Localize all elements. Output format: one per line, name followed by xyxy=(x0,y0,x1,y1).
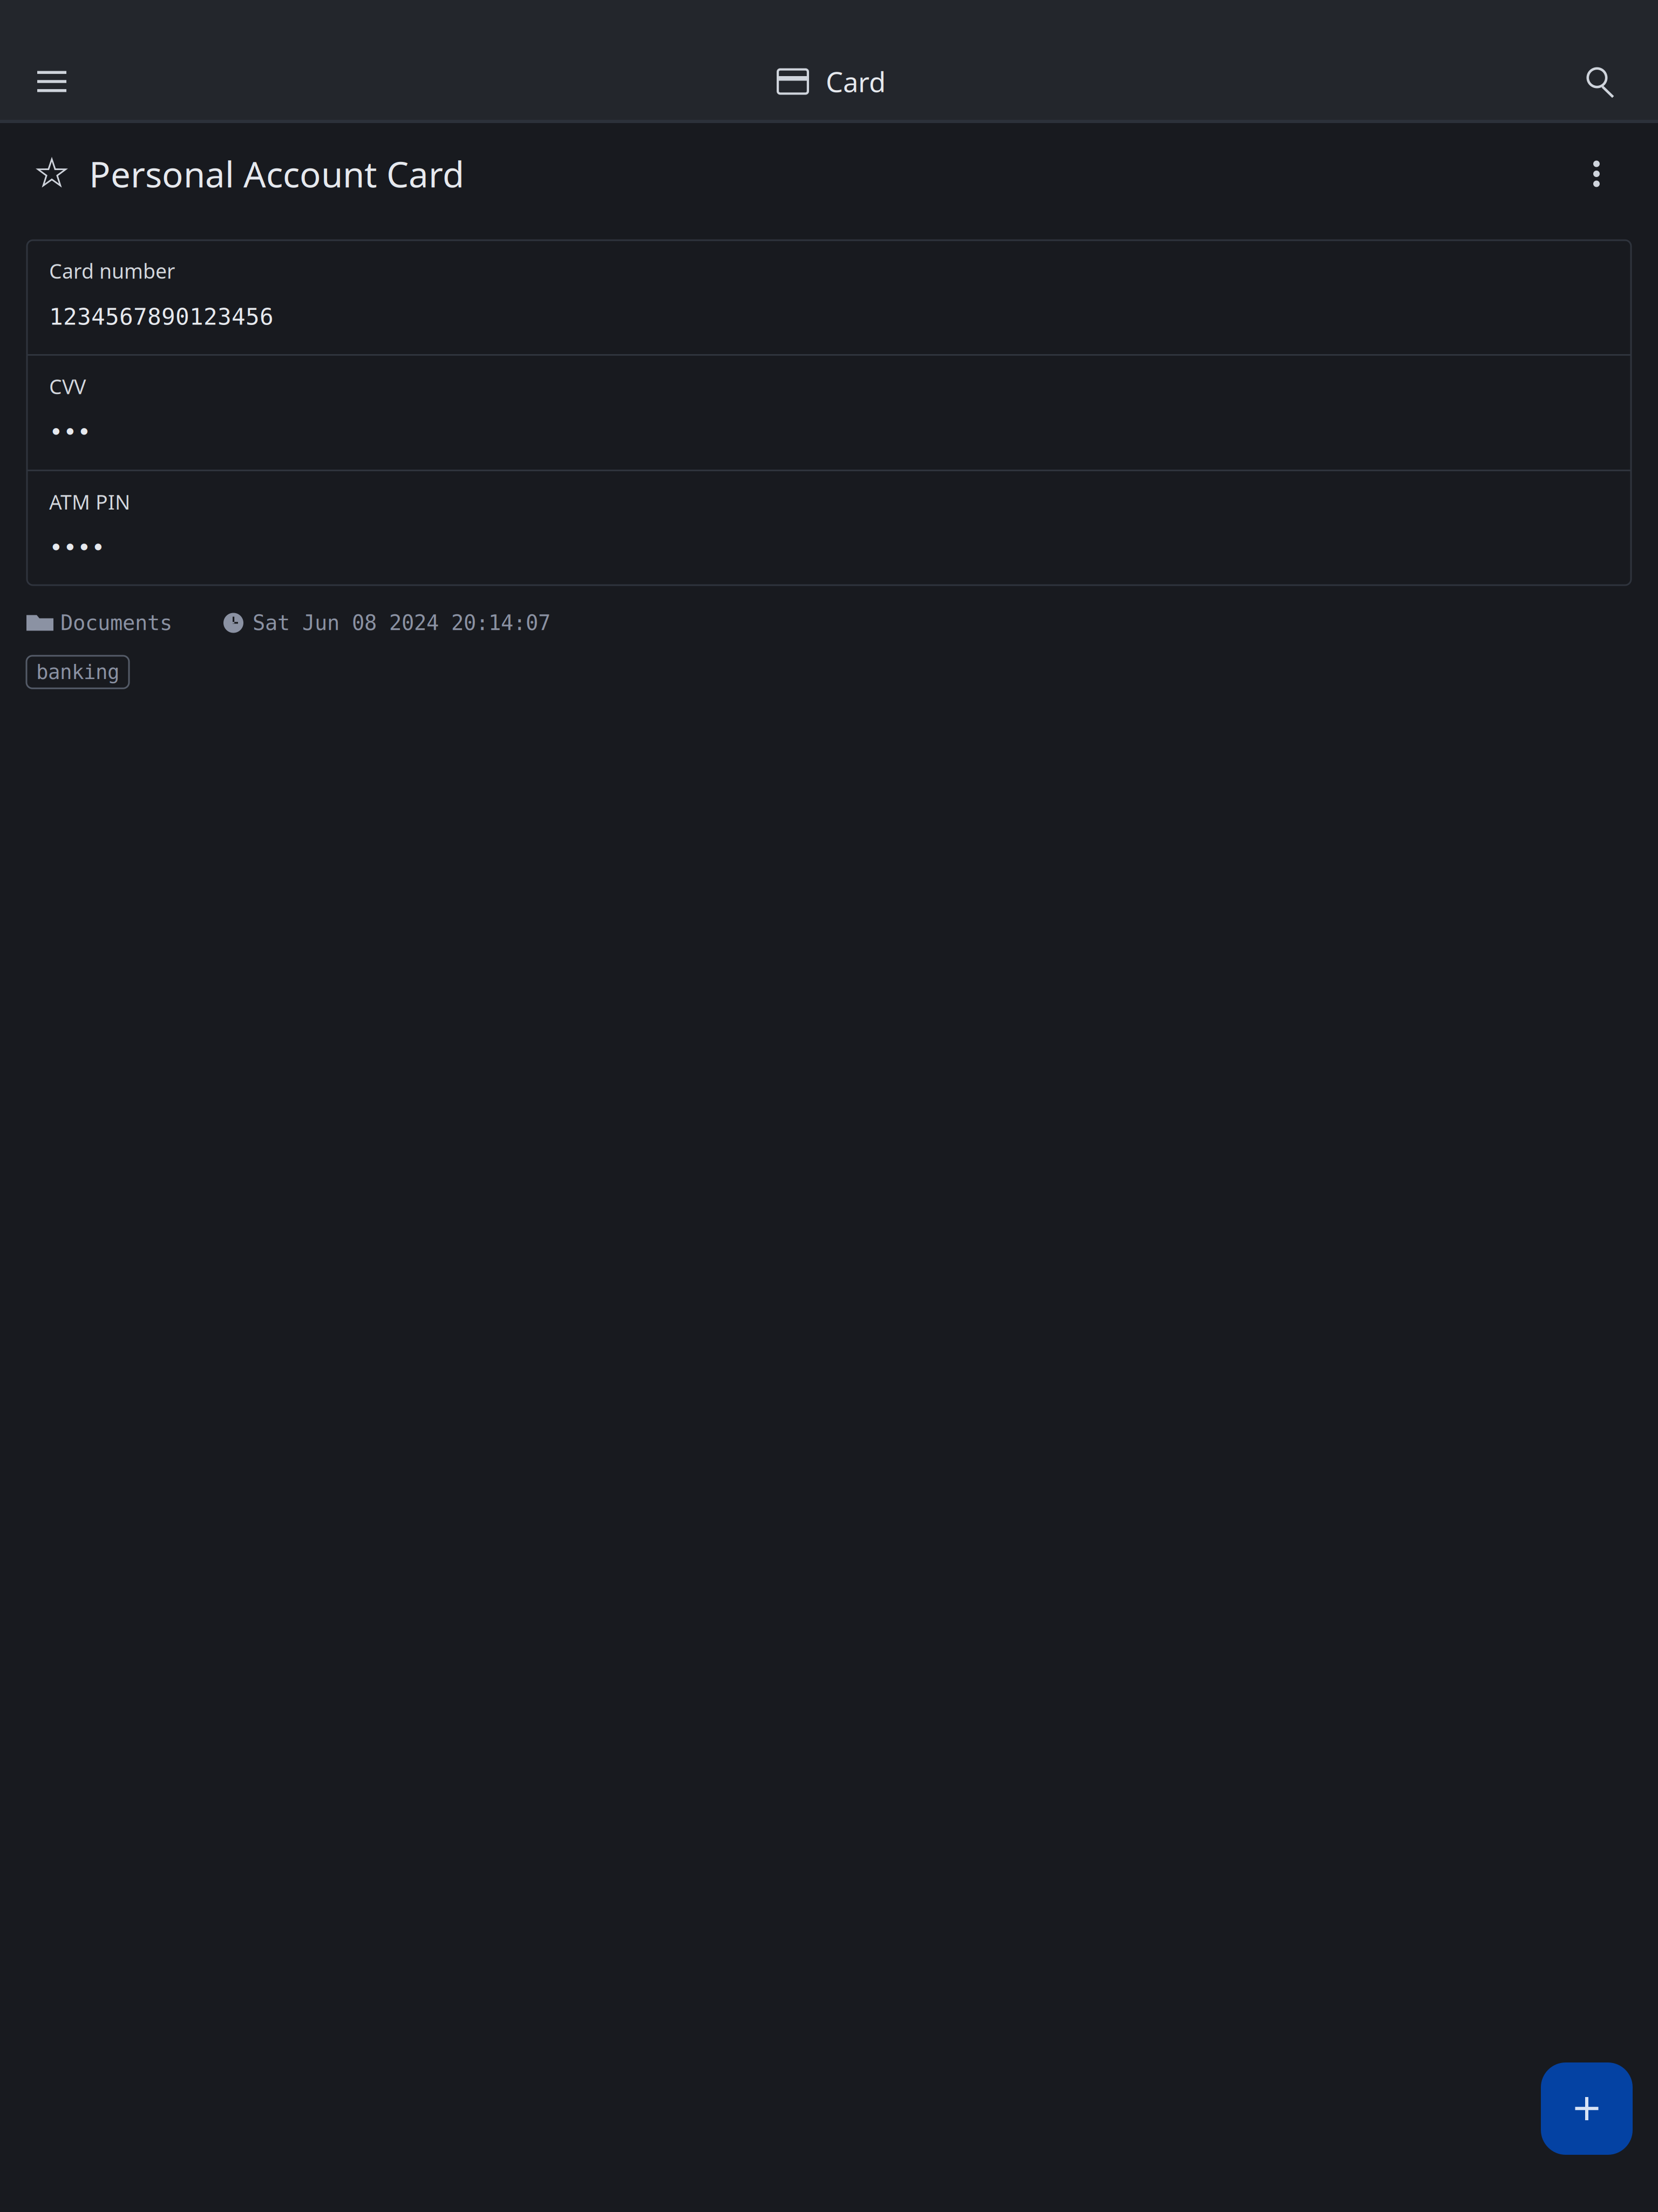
staticText: 1234567890123456 xyxy=(49,304,274,330)
button[interactable]: CVV xyxy=(27,356,1631,470)
button[interactable]: Search xyxy=(1563,44,1639,119)
staticText: ATM PIN xyxy=(49,488,130,515)
button[interactable]: Menu xyxy=(14,44,90,119)
staticText: Personal Account Card xyxy=(89,150,464,197)
button[interactable]: ATM PIN xyxy=(27,471,1631,585)
staticText: Sat Jun 08 2024 20:14:07 xyxy=(253,611,551,635)
staticText: CVV xyxy=(49,373,86,400)
button[interactable]: Favourite xyxy=(23,144,81,203)
button[interactable]: banking xyxy=(26,656,129,688)
staticText: •••• xyxy=(49,535,105,561)
staticText: Documents xyxy=(60,611,172,635)
staticText: banking xyxy=(36,661,119,684)
button[interactable]: More options xyxy=(1567,144,1626,203)
button[interactable]: Add xyxy=(1541,2062,1633,2155)
staticText: ••• xyxy=(49,419,91,445)
staticText: Card xyxy=(826,63,886,100)
button[interactable]: Card number xyxy=(27,240,1631,354)
button[interactable]: Personal Account Card xyxy=(81,150,464,197)
staticText: Card number xyxy=(49,257,175,284)
